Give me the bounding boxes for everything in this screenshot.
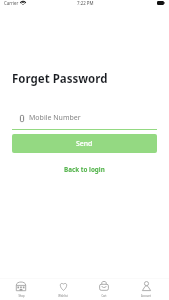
button[interactable]: Send [12,134,157,153]
button[interactable]: Account [127,279,167,300]
staticText: Shop [18,294,25,298]
staticText: Carrier [4,0,19,6]
staticText: Account [141,294,151,298]
button[interactable]: Back to login [58,163,111,176]
staticText: Send [76,139,93,148]
staticText: 7:22 PM [77,0,94,6]
staticText: Cart [101,294,107,298]
staticText: Mobile Number [29,113,81,123]
staticText: Forget Password [12,71,108,87]
button[interactable]: Wishlist [44,279,84,300]
button[interactable]: Cart [85,279,125,300]
button[interactable]: Shop [2,279,42,300]
staticText: Wishlist [58,294,68,298]
